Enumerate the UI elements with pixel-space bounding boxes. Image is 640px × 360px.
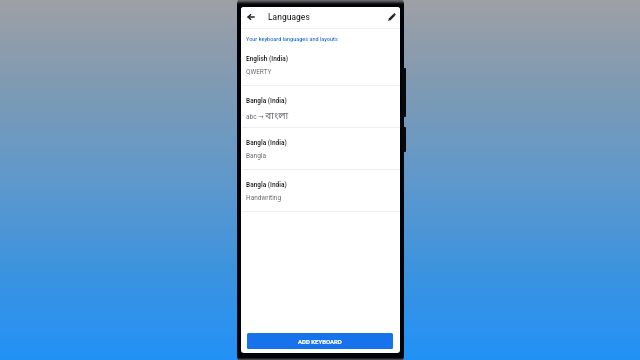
staticText: Languages [268,12,310,22]
staticText: Bangla (India) [246,139,287,147]
button[interactable]: Edit [384,9,400,25]
staticText: Your keyboard languages and layouts [246,36,338,42]
button[interactable]: Bangla (India) [241,176,400,218]
staticText: Handwriting [246,194,282,202]
staticText: English (India) [246,55,289,63]
staticText: QWERTY [246,68,272,76]
button[interactable]: Bangla (India) [241,134,400,176]
staticText: abc → বাংলা [246,110,289,123]
button[interactable]: Navigate up [243,9,259,25]
staticText: Bangla (India) [246,97,287,105]
button[interactable]: Bangla (India) [241,92,400,134]
staticText: Bangla (India) [246,181,287,189]
staticText: ADD KEYBOARD [298,338,342,345]
staticText: Bangla [246,152,266,160]
button[interactable]: ADD KEYBOARD [247,333,393,349]
button[interactable]: English (India) [241,50,400,92]
